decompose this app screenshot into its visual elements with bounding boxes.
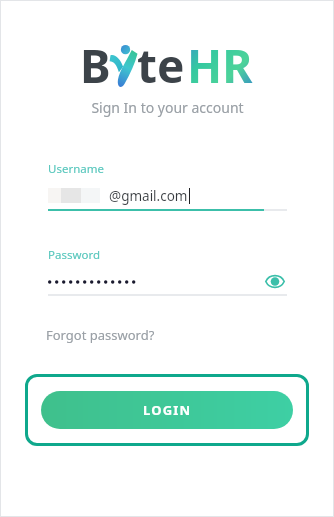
- staticText: B: [80, 34, 111, 92]
- button[interactable]: Show password: [263, 271, 287, 291]
- staticText: Password: [48, 247, 101, 263]
- staticText: Sign In to your account: [91, 98, 244, 117]
- staticText: Forgot password?: [46, 326, 155, 344]
- button[interactable]: Forgot password?: [44, 324, 157, 346]
- button[interactable]: @gmail.com: [48, 186, 287, 205]
- staticText: @gmail.com: [109, 187, 188, 205]
- staticText: Username: [48, 161, 104, 177]
- staticText: LOGIN: [143, 401, 192, 419]
- staticText: te: [137, 34, 185, 92]
- staticText: HR: [187, 34, 253, 92]
- button[interactable]: LOGIN: [41, 391, 293, 429]
- button[interactable]: [48, 271, 263, 291]
